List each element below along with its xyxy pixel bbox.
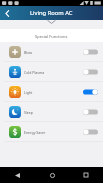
staticText: Cold Plasma — [24, 70, 45, 75]
button[interactable]: Switch on — [83, 89, 98, 95]
staticText: Special Functions — [35, 34, 68, 39]
button[interactable]: Blow — [0, 42, 103, 62]
button[interactable]: Light — [0, 82, 103, 102]
staticText: Blow — [24, 50, 32, 55]
button[interactable]: Switch off — [83, 129, 98, 135]
staticText: Energy Saver — [24, 130, 46, 135]
button[interactable]: Home — [44, 167, 60, 183]
staticText: Light — [24, 90, 33, 95]
button[interactable]: Energy Saver — [0, 122, 103, 142]
button[interactable]: Switch off — [83, 69, 98, 75]
button[interactable]: Back — [9, 167, 25, 183]
staticText: Sleep — [24, 110, 33, 115]
button[interactable]: Recents — [78, 167, 94, 183]
button[interactable]: Sleep — [0, 102, 103, 122]
button[interactable]: Cold Plasma — [0, 62, 103, 82]
button[interactable]: Switch off — [83, 109, 98, 115]
staticText: Living Room AC — [30, 9, 73, 17]
button[interactable]: Switch off — [83, 49, 98, 55]
button[interactable]: Back — [0, 6, 14, 20]
